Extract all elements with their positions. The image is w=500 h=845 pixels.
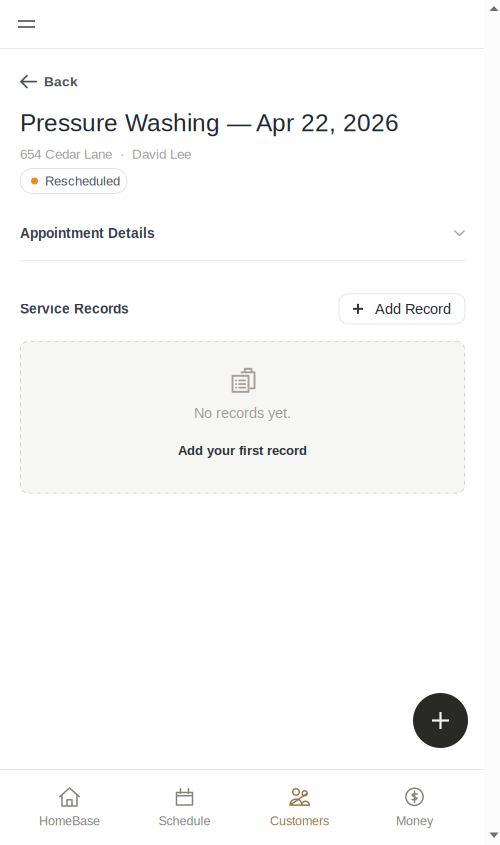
staticText: HomeBase xyxy=(39,814,100,828)
staticText: Add your first record xyxy=(178,443,307,458)
staticText: 654 Cedar Lane · David Lee xyxy=(20,146,191,161)
staticText: Money xyxy=(396,814,433,828)
button[interactable]: Money xyxy=(357,787,472,828)
staticText: Add Record xyxy=(375,301,451,317)
button[interactable]: Customers xyxy=(242,787,357,828)
staticText: No records yet. xyxy=(194,405,291,421)
staticText: Rescheduled xyxy=(45,174,120,188)
staticText: Customers xyxy=(270,814,329,828)
button[interactable]: HomeBase xyxy=(12,787,127,828)
button[interactable]: Add xyxy=(413,693,468,748)
staticText: Appointment Details xyxy=(20,225,155,241)
staticText: Service Records xyxy=(20,301,129,316)
button[interactable]: Back xyxy=(0,49,94,93)
button[interactable]: Schedule xyxy=(127,787,242,828)
staticText: Back xyxy=(44,74,78,89)
button[interactable]: Menu xyxy=(0,8,53,40)
staticText: Schedule xyxy=(158,814,210,828)
button[interactable]: Add Record xyxy=(339,294,465,324)
staticText: Pressure Washing — Apr 22, 2026 xyxy=(20,109,399,136)
